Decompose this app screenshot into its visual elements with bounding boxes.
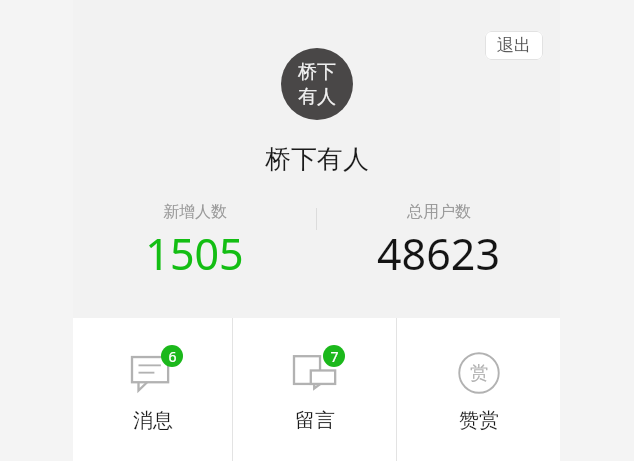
other: Comments bbox=[294, 352, 336, 394]
staticText: 总用户数 bbox=[407, 202, 471, 222]
staticText: 下 bbox=[317, 60, 336, 84]
button[interactable]: Messages bbox=[73, 318, 232, 461]
staticText: 6 bbox=[168, 347, 177, 366]
button[interactable]: 总用户数 bbox=[317, 202, 560, 283]
staticText: 赞赏 bbox=[459, 408, 499, 433]
button[interactable]: Avatar bbox=[281, 48, 353, 120]
staticText: 有 bbox=[298, 85, 317, 109]
other: Reward bbox=[458, 352, 500, 394]
staticText: 人 bbox=[317, 85, 336, 109]
staticText: 消息 bbox=[133, 408, 173, 433]
button[interactable]: 新增人数 bbox=[73, 202, 316, 283]
staticText: 留言 bbox=[295, 408, 335, 433]
staticText: 赏 bbox=[470, 362, 488, 385]
staticText: 桥下有人 bbox=[265, 143, 369, 176]
button[interactable]: 退出 bbox=[485, 31, 543, 60]
staticText: 桥 bbox=[298, 60, 317, 84]
staticText: 48623 bbox=[377, 224, 500, 283]
staticText: 新增人数 bbox=[163, 202, 227, 222]
button[interactable]: Comments bbox=[233, 318, 396, 461]
staticText: 1505 bbox=[145, 224, 244, 283]
button[interactable]: Reward bbox=[397, 318, 560, 461]
staticText: 退出 bbox=[497, 35, 531, 56]
staticText: 7 bbox=[330, 347, 339, 366]
other: Messages bbox=[132, 352, 174, 394]
